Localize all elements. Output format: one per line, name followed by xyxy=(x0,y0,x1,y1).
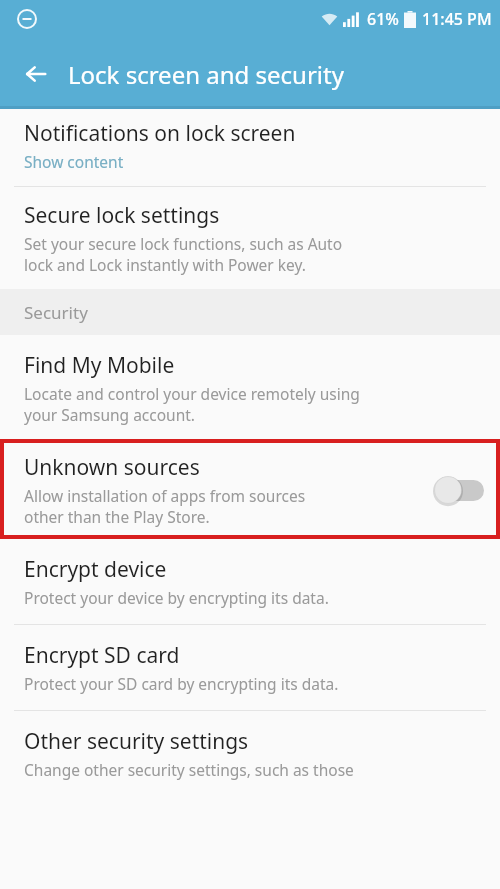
button[interactable]: Find My Mobile xyxy=(0,335,500,439)
staticText: Find My Mobile xyxy=(24,351,175,380)
staticText: Security xyxy=(24,301,88,324)
staticText: other than the Play Store. xyxy=(24,506,210,527)
staticText: Lock screen and security xyxy=(68,58,344,91)
staticText: Locate and control your device remotely … xyxy=(24,383,360,404)
staticText: Show content xyxy=(24,151,124,172)
button[interactable]: Other security settings xyxy=(0,711,500,796)
staticText: Allow installation of apps from sources xyxy=(24,485,306,506)
button[interactable]: Secure lock settings xyxy=(0,187,500,289)
staticText: Change other security settings, such as … xyxy=(24,759,354,780)
button[interactable]: Notifications on lock screen xyxy=(0,109,500,186)
button[interactable]: Encrypt device xyxy=(0,539,500,624)
staticText: Unknown sources xyxy=(24,453,200,482)
staticText: lock and Lock instantly with Power key. xyxy=(24,254,306,275)
button[interactable]: Unknown sources xyxy=(0,439,500,539)
staticText: Protect your device by encrypting its da… xyxy=(24,587,329,608)
staticText: 61% xyxy=(367,8,399,30)
staticText: Set your secure lock functions, such as … xyxy=(24,233,343,254)
staticText: Protect your SD card by encrypting its d… xyxy=(24,673,339,694)
staticText: Other security settings xyxy=(24,727,249,756)
staticText: your Samsung account. xyxy=(24,404,195,425)
staticText: Secure lock settings xyxy=(24,201,220,230)
button[interactable]: Back xyxy=(14,52,58,96)
staticText: Encrypt device xyxy=(24,555,167,584)
staticText: Encrypt SD card xyxy=(24,641,180,670)
button[interactable]: Encrypt SD card xyxy=(0,625,500,710)
staticText: Notifications on lock screen xyxy=(24,119,296,148)
staticText: 11:45 PM xyxy=(422,8,492,30)
